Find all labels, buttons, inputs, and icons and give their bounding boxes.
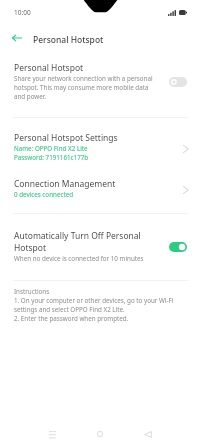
- staticText: 0 devices connected: [14, 190, 74, 199]
- button[interactable]: Recent apps: [38, 427, 66, 441]
- staticText: Personal Hotspot: [14, 62, 84, 74]
- button[interactable]: Back: [134, 427, 162, 441]
- button[interactable]: Home: [86, 427, 114, 441]
- staticText: 2. Enter the password when prompted.: [14, 314, 129, 323]
- staticText: Instructions: [14, 287, 50, 296]
- staticText: Share your network connection with a per…: [14, 74, 156, 101]
- button[interactable]: Personal Hotspot: [0, 55, 201, 112]
- staticText: 1. On your computer or other devices, go…: [14, 296, 189, 314]
- staticText: Automatically Turn Off Personal Hotspot: [14, 230, 159, 254]
- staticText: 10:00: [14, 8, 31, 17]
- button[interactable]: Connection Management: [0, 170, 201, 206]
- button[interactable]: Turn on: [169, 77, 187, 87]
- staticText: Personal Hotspot Settings: [14, 132, 118, 144]
- button[interactable]: Back: [5, 28, 29, 48]
- staticText: Name: OPPO Find X2 Lite: [14, 144, 88, 153]
- button[interactable]: Turn off: [169, 242, 187, 252]
- staticText: Password: 7191161c177b: [14, 153, 89, 162]
- button[interactable]: Automatically Turn Off Personal Hotspot: [0, 222, 201, 272]
- staticText: Personal Hotspot: [33, 34, 104, 46]
- staticText: Connection Management: [14, 178, 116, 190]
- staticText: When no device is connected for 10 minut…: [14, 254, 144, 263]
- button[interactable]: Personal Hotspot Settings: [0, 124, 201, 166]
